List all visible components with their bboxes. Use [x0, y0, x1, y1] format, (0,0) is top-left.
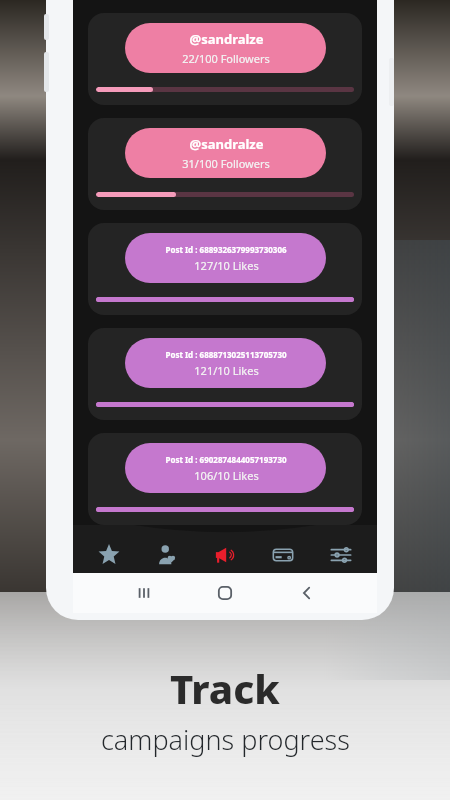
staticText: 106/10 Likes [194, 468, 259, 483]
button[interactable]: Payments [261, 537, 305, 573]
button[interactable]: Post Id : 6888713025113705730 [88, 328, 362, 420]
staticText: 31/100 Followers [182, 156, 270, 171]
button[interactable]: @sandralze [88, 13, 362, 105]
button[interactable]: @sandralze [88, 118, 362, 210]
staticText: Track [170, 661, 280, 715]
button[interactable]: Settings [319, 537, 363, 573]
button[interactable]: Campaigns [203, 537, 247, 573]
staticText: Post Id : 6889326379993730306 [165, 244, 287, 255]
button[interactable]: Post Id : 6902874844057193730 [88, 433, 362, 525]
staticText: Post Id : 6902874844057193730 [165, 454, 287, 465]
staticText: 127/10 Likes [194, 258, 259, 273]
button[interactable]: Followers [145, 537, 189, 573]
staticText: @sandralze [189, 30, 264, 48]
staticText: Post Id : 6888713025113705730 [165, 349, 287, 360]
staticText: 121/10 Likes [194, 363, 259, 378]
button[interactable]: Post Id : 6889326379993730306 [88, 223, 362, 315]
staticText: campaigns progress [101, 721, 350, 758]
button[interactable]: Favorites [87, 537, 131, 573]
staticText: @sandralze [189, 135, 264, 153]
staticText: 22/100 Followers [182, 51, 270, 66]
